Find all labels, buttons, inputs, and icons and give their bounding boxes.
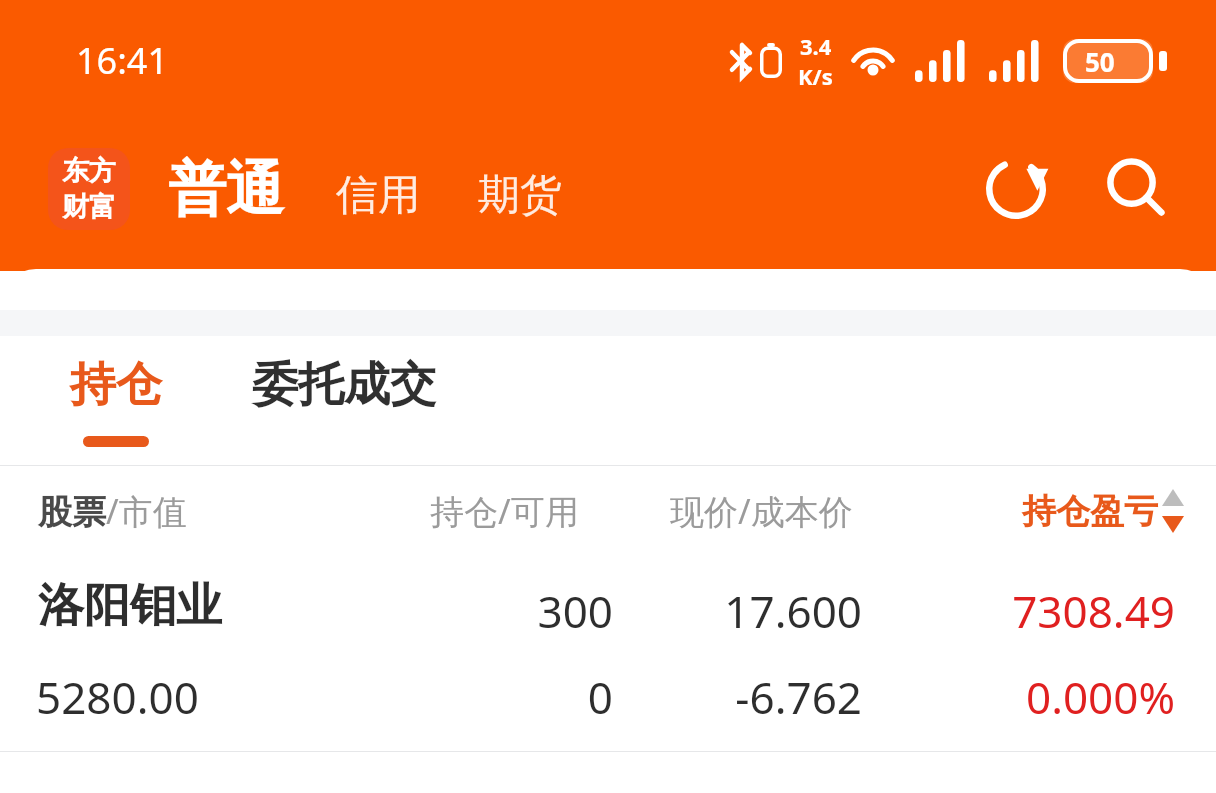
button[interactable]: 普通 [168,153,284,226]
staticText: 50 [1085,44,1115,79]
staticText: K/s [798,61,833,91]
staticText: 持仓/可用 [430,488,579,534]
staticText: 期货 [478,169,562,222]
staticText: 普通 [168,153,284,226]
staticText: 财富 [62,190,116,224]
button[interactable]: 东方财富 [48,148,130,230]
button[interactable]: 委托成交 [252,356,436,414]
staticText: 信用 [336,169,420,222]
button[interactable]: Refresh [974,147,1058,231]
button[interactable]: Search [1094,147,1178,231]
staticText: 3.4 [800,31,832,61]
staticText: /市值 [106,488,187,534]
staticText: 现价/成本价 [670,488,853,534]
staticText: 东方 [62,154,116,188]
button[interactable]: 持仓 [30,336,202,447]
staticText: 持仓盈亏 [1022,490,1158,533]
staticText: 股票 [38,491,106,534]
staticText: 洛阳钼业 [38,577,222,635]
staticText: 7308.49 [925,581,1175,641]
staticText: 300 [413,581,613,641]
staticText: -6.762 [662,667,862,727]
staticText: 16:41 [76,36,169,85]
button[interactable]: 持仓/可用 [430,488,579,534]
button[interactable]: 洛阳钼业 [0,561,1216,751]
staticText: 0 [413,667,613,727]
button[interactable]: 信用 [336,169,420,222]
staticText: 17.600 [662,581,862,641]
button[interactable]: 股票 [38,488,187,534]
staticText: 委托成交 [252,356,436,414]
staticText: 0.000% [925,667,1175,727]
staticText: 持仓 [70,356,162,414]
staticText: 5280.00 [36,667,199,727]
button[interactable]: 现价/成本价 [670,488,853,534]
button[interactable]: 期货 [478,169,562,222]
button[interactable]: 持仓盈亏 [1022,488,1188,534]
